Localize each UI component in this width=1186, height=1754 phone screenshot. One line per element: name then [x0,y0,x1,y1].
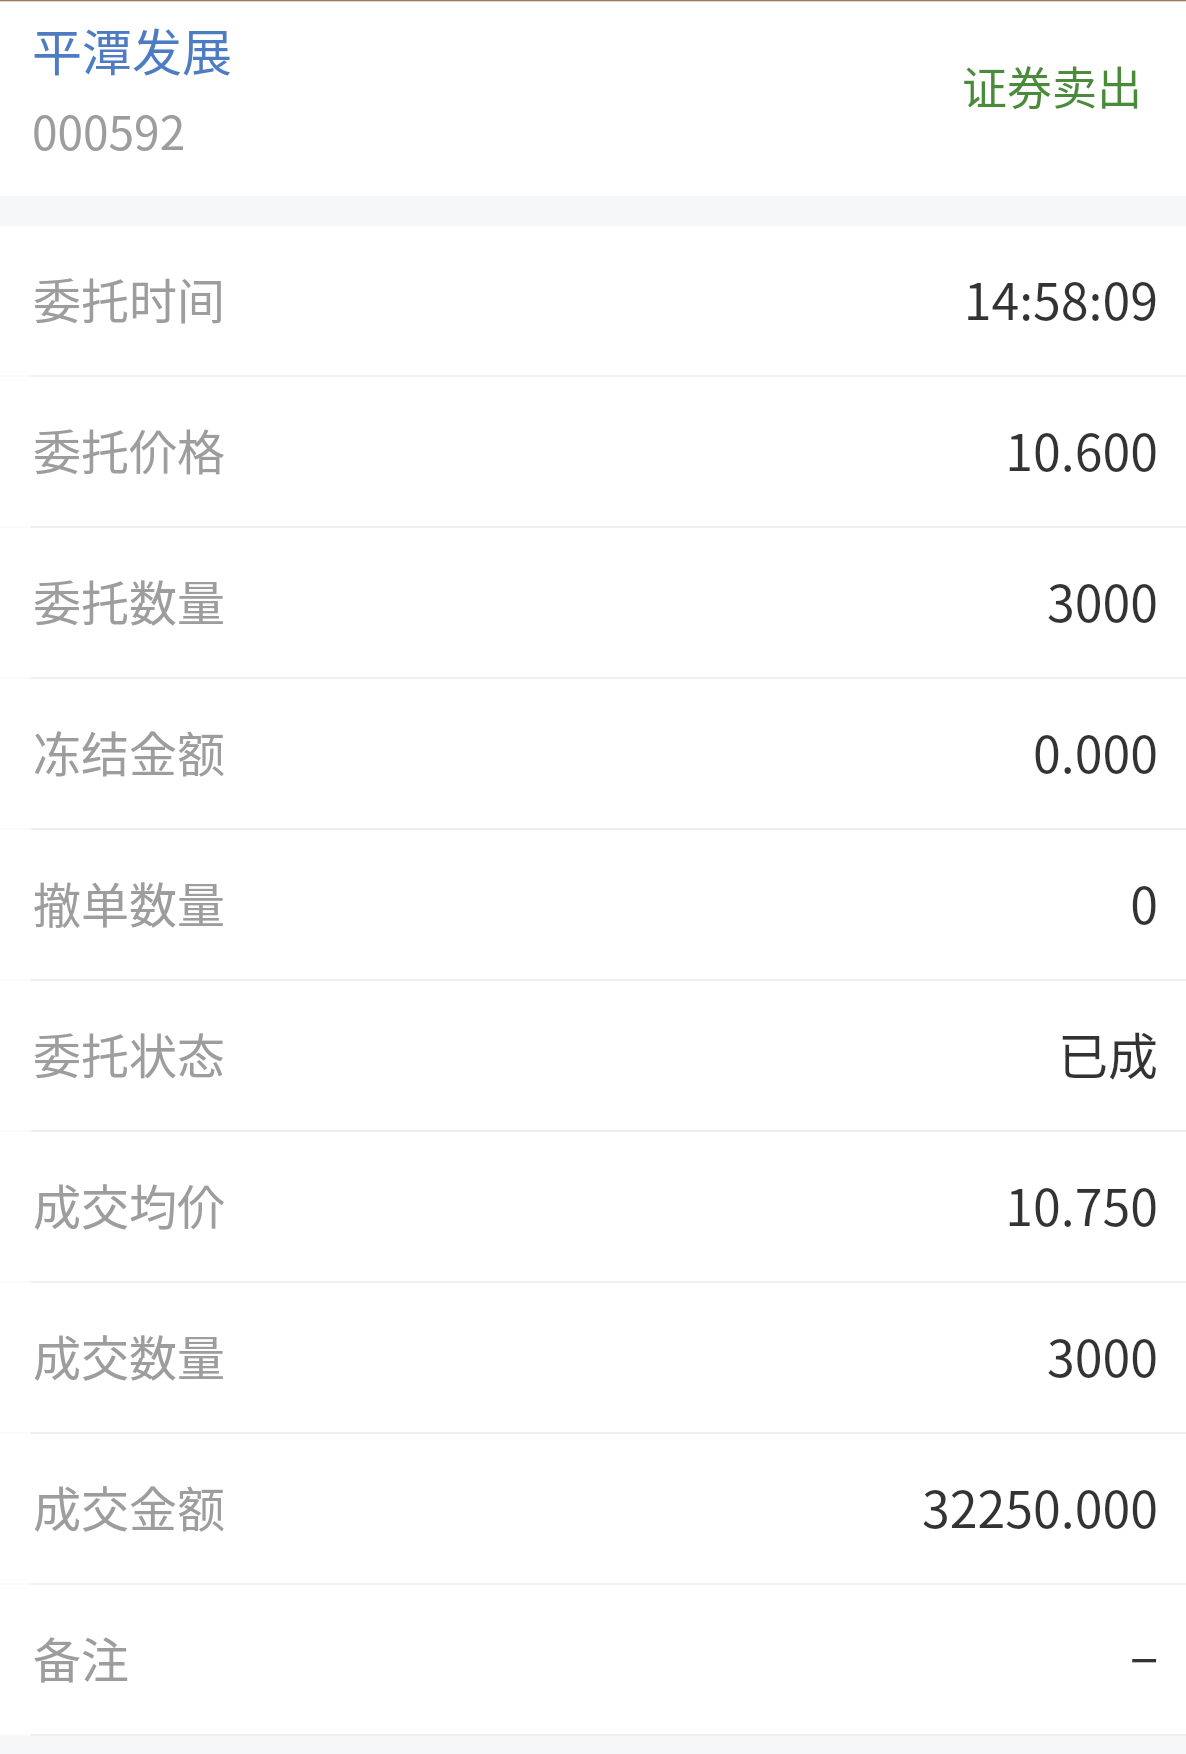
staticText: 0.000 [1033,715,1158,787]
staticText: 14:58:09 [963,262,1158,334]
staticText: 32250.000 [922,1470,1158,1542]
staticText: 000592 [32,97,186,164]
button[interactable]: 撤单数量 [0,830,1186,981]
staticText: 3000 [1047,1319,1158,1391]
staticText: 平潭发展 [32,13,232,85]
button[interactable]: 备注 [0,1585,1186,1736]
staticText: − [1130,1621,1158,1693]
button[interactable]: 成交数量 [0,1283,1186,1434]
staticText: 10.750 [1005,1168,1158,1240]
staticText: 3000 [1047,564,1158,636]
button[interactable]: 委托状态 [0,981,1186,1132]
staticText: 委托时间 [33,263,226,333]
button[interactable]: 成交均价 [0,1132,1186,1283]
button[interactable]: 委托价格 [0,377,1186,528]
staticText: 已成 [1058,1017,1158,1089]
button[interactable]: 委托数量 [0,528,1186,679]
button[interactable]: 成交金额 [0,1434,1186,1585]
button[interactable]: 冻结金额 [0,679,1186,830]
staticText: 成交均价 [33,1169,226,1239]
staticText: 成交金额 [33,1471,226,1541]
staticText: 冻结金额 [33,716,226,786]
button[interactable]: 委托时间 [0,226,1186,377]
staticText: 成交数量 [33,1320,226,1390]
staticText: 撤单数量 [33,867,226,937]
staticText: 委托状态 [33,1018,226,1088]
button[interactable]: 平潭发展 [0,2,1186,196]
staticText: 委托价格 [33,414,226,484]
staticText: 0 [1130,866,1158,938]
staticText: 委托数量 [33,565,226,635]
staticText: 备注 [33,1622,130,1692]
staticText: 10.600 [1005,413,1158,485]
staticText: 证券卖出 [962,53,1143,118]
